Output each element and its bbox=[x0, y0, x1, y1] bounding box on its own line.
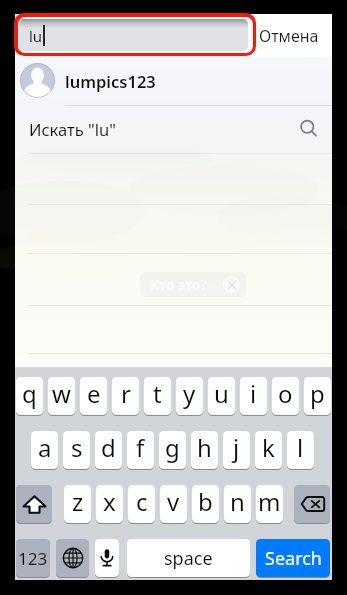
button[interactable]: u bbox=[208, 377, 235, 415]
staticText: a bbox=[38, 431, 52, 464]
staticText: Отмена bbox=[259, 25, 319, 47]
staticText: x bbox=[103, 485, 116, 518]
button[interactable]: Backspace bbox=[294, 485, 330, 523]
button[interactable]: g bbox=[159, 431, 186, 469]
button[interactable]: o bbox=[272, 377, 299, 415]
staticText: q bbox=[22, 377, 37, 410]
button[interactable]: c bbox=[128, 485, 155, 523]
button[interactable]: x bbox=[96, 485, 123, 523]
staticText: h bbox=[197, 431, 212, 464]
staticText: z bbox=[72, 485, 84, 518]
staticText: Search bbox=[265, 546, 322, 571]
button[interactable]: v bbox=[160, 485, 187, 523]
staticText: c bbox=[136, 485, 148, 518]
staticText: s bbox=[71, 431, 83, 464]
staticText: Кто это? bbox=[150, 275, 207, 294]
button[interactable]: space bbox=[127, 539, 250, 577]
staticText: r bbox=[121, 377, 131, 410]
staticText: t bbox=[153, 377, 162, 410]
button[interactable]: Dictation bbox=[95, 539, 119, 577]
staticText: f bbox=[136, 431, 145, 464]
staticText: space bbox=[164, 546, 213, 571]
button[interactable]: a bbox=[31, 431, 58, 469]
staticText: d bbox=[101, 431, 116, 464]
staticText: Искать "lu" bbox=[29, 118, 116, 140]
button[interactable]: 123 bbox=[16, 539, 50, 577]
staticText: l bbox=[297, 431, 304, 464]
button[interactable]: p bbox=[304, 377, 331, 415]
button[interactable]: k bbox=[255, 431, 282, 469]
staticText: y bbox=[183, 377, 196, 410]
button[interactable]: lumpics123 bbox=[15, 56, 332, 105]
button[interactable]: Search bbox=[256, 539, 330, 577]
button[interactable]: d bbox=[95, 431, 122, 469]
button[interactable]: Отмена bbox=[259, 25, 319, 47]
button[interactable]: Switch keyboard bbox=[56, 539, 89, 577]
button[interactable]: w bbox=[48, 377, 75, 415]
staticText: j bbox=[233, 431, 240, 464]
button[interactable]: r bbox=[112, 377, 139, 415]
staticText: e bbox=[87, 377, 101, 410]
button[interactable]: q bbox=[16, 377, 43, 415]
button[interactable]: y bbox=[176, 377, 203, 415]
staticText: b bbox=[198, 485, 213, 518]
button[interactable]: i bbox=[240, 377, 267, 415]
button[interactable]: s bbox=[63, 431, 90, 469]
button[interactable]: lu bbox=[19, 19, 248, 51]
button[interactable]: t bbox=[144, 377, 171, 415]
button[interactable]: n bbox=[224, 485, 251, 523]
staticText: w bbox=[52, 377, 71, 410]
staticText: 123 bbox=[18, 547, 48, 570]
button[interactable]: b bbox=[192, 485, 219, 523]
staticText: v bbox=[167, 485, 180, 518]
staticText: g bbox=[165, 431, 180, 464]
staticText: k bbox=[262, 431, 275, 464]
button[interactable]: z bbox=[64, 485, 91, 523]
staticText: m bbox=[258, 485, 281, 518]
button[interactable]: e bbox=[80, 377, 107, 415]
staticText: p bbox=[310, 377, 325, 410]
button[interactable]: Shift bbox=[16, 485, 52, 523]
staticText: lu bbox=[29, 26, 43, 46]
button[interactable]: h bbox=[191, 431, 218, 469]
button[interactable]: f bbox=[127, 431, 154, 469]
button[interactable]: l bbox=[287, 431, 314, 469]
button[interactable]: Кто это? bbox=[140, 272, 246, 297]
staticText: u bbox=[214, 377, 229, 410]
button[interactable]: m bbox=[256, 485, 283, 523]
staticText: i bbox=[250, 377, 257, 410]
staticText: o bbox=[278, 377, 293, 410]
other: Search bbox=[298, 118, 320, 140]
button[interactable]: Искать "lu" bbox=[15, 106, 332, 152]
button[interactable]: j bbox=[223, 431, 250, 469]
staticText: lumpics123 bbox=[65, 70, 156, 92]
staticText: n bbox=[230, 485, 245, 518]
